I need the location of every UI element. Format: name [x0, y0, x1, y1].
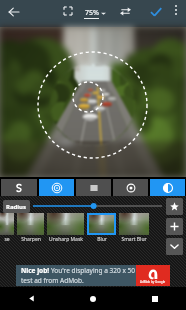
button[interactable]: se — [0, 213, 14, 243]
button[interactable]: Smart Blur — [119, 213, 149, 243]
button[interactable]: Blur — [87, 213, 116, 243]
button[interactable]: Favorite — [166, 198, 183, 215]
button[interactable]: More options — [166, 0, 186, 20]
staticText: Unsharp Mask — [49, 236, 83, 243]
button[interactable]: Focus — [113, 179, 148, 196]
button[interactable]: Collapse — [166, 238, 183, 255]
staticText: Radius — [6, 203, 27, 211]
button[interactable]: Add — [166, 218, 183, 235]
staticText: AdMob by Google — [140, 280, 166, 284]
staticText: test ad from AdMob. — [21, 276, 84, 285]
button[interactable]: Nice job! — [16, 265, 170, 286]
button[interactable]: Sharpen — [17, 213, 44, 243]
staticText: Smart Blur — [121, 236, 147, 243]
button[interactable]: Apply — [144, 0, 168, 24]
button[interactable]: Back — [2, 0, 26, 24]
staticText: 75% — [85, 8, 99, 18]
button[interactable]: Adjust — [76, 179, 111, 196]
button[interactable]: Fit to screen — [57, 0, 79, 22]
button[interactable] — [30, 198, 164, 214]
button[interactable]: Recent apps — [124, 287, 186, 310]
staticText: Nice job! — [21, 266, 51, 275]
button[interactable]: Home — [62, 287, 124, 310]
button[interactable]: Compare original — [114, 0, 136, 22]
staticText: Blur — [97, 236, 107, 243]
staticText: You're displaying a 320 x 50 — [51, 266, 136, 275]
button[interactable]: Effects — [150, 179, 185, 196]
staticText: Sharpen — [21, 236, 41, 243]
button[interactable]: Radius — [3, 200, 30, 213]
button[interactable]: 75% — [84, 0, 106, 27]
staticText: se — [4, 236, 10, 243]
button[interactable]: Shape — [1, 179, 37, 196]
button[interactable]: Back — [0, 287, 62, 310]
button[interactable]: Unsharp Mask — [47, 213, 84, 243]
button[interactable]: Selective — [39, 179, 74, 196]
